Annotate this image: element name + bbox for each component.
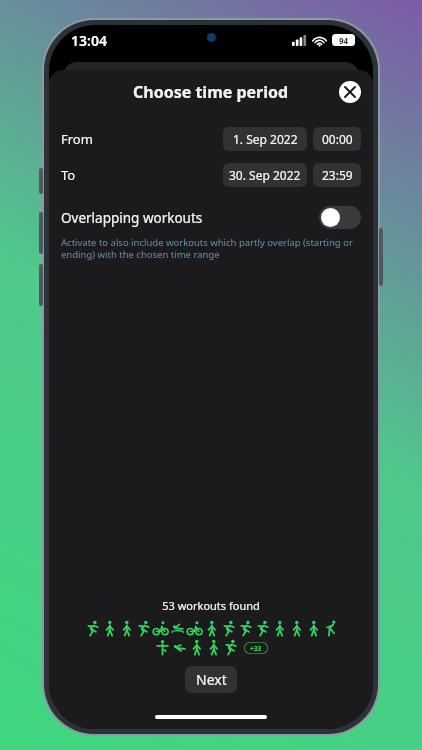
staticText: 13:04 bbox=[71, 31, 107, 50]
staticText: 23:59 bbox=[322, 167, 353, 183]
button[interactable]: 23:59 bbox=[313, 163, 361, 187]
staticText: 30. Sep 2022 bbox=[229, 167, 301, 183]
button[interactable]: Close bbox=[339, 81, 361, 103]
staticText: Next bbox=[196, 670, 227, 689]
staticText: From bbox=[61, 130, 93, 148]
staticText: To bbox=[61, 166, 76, 184]
staticText: 1. Sep 2022 bbox=[233, 131, 298, 147]
staticText: 94 bbox=[339, 35, 349, 46]
button[interactable]: Overlapping workouts bbox=[49, 206, 373, 261]
button[interactable]: Next bbox=[185, 666, 237, 693]
staticText: 00:00 bbox=[322, 131, 353, 147]
button[interactable]: 30. Sep 2022 bbox=[223, 163, 307, 187]
staticText: Overlapping workouts bbox=[61, 209, 203, 227]
staticText: Choose time period bbox=[133, 81, 289, 103]
staticText: 53 workouts found bbox=[162, 598, 260, 613]
button[interactable]: 00:00 bbox=[313, 127, 361, 151]
staticText: +33 bbox=[250, 644, 262, 653]
button[interactable]: 1. Sep 2022 bbox=[223, 127, 307, 151]
staticText: Activate to also include workouts which … bbox=[61, 236, 353, 261]
